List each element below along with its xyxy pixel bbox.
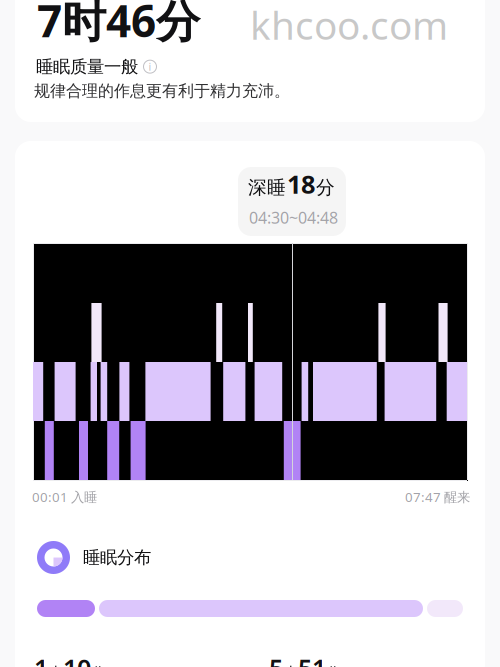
staticText: i	[148, 60, 151, 74]
staticText: 7时46分	[37, 0, 200, 49]
staticText: khcoo.com	[250, 0, 448, 50]
staticText: 5	[269, 651, 283, 667]
staticText: 51	[298, 651, 326, 667]
button[interactable]: 睡眠阶段图表	[33, 243, 468, 481]
staticText: 分	[326, 664, 341, 667]
button[interactable]: 睡眠分布	[37, 541, 463, 574]
staticText: 深睡	[248, 176, 286, 199]
staticText: 小	[48, 664, 63, 667]
staticText: 00:01 入睡	[32, 488, 97, 506]
staticText: 07:47 醒来	[405, 488, 470, 506]
staticText: 睡眠质量一般	[36, 56, 138, 77]
staticText: 规律合理的作息更有利于精力充沛。	[34, 81, 290, 101]
staticText: 分	[316, 176, 335, 199]
staticText: 10	[63, 651, 91, 667]
staticText: 04:30~04:48	[249, 207, 338, 228]
staticText: 小	[283, 664, 298, 667]
button[interactable]: 睡眠质量说明	[143, 60, 157, 74]
staticText: 睡眠分布	[83, 547, 151, 568]
staticText: 分	[91, 664, 106, 667]
staticText: 18	[287, 167, 315, 201]
staticText: 1	[34, 651, 48, 667]
